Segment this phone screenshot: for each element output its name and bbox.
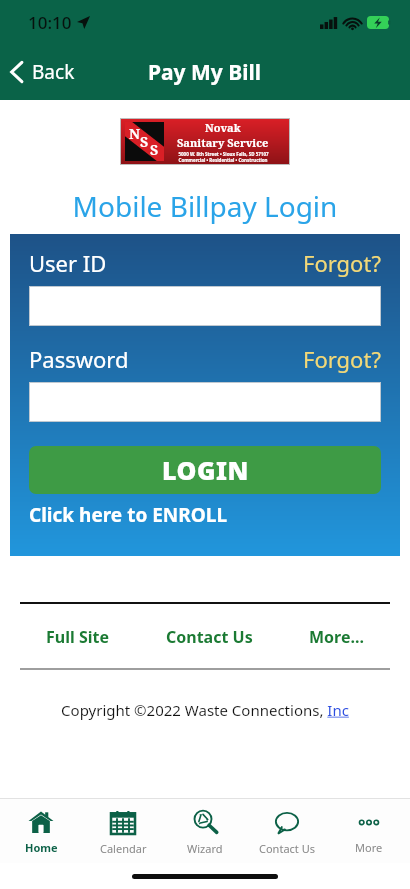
button[interactable]: Contact Us bbox=[164, 624, 255, 650]
button[interactable]: More bbox=[328, 799, 410, 863]
button[interactable]: LOGIN bbox=[29, 446, 381, 494]
button[interactable]: Click here to ENROLL bbox=[29, 502, 228, 528]
staticText: Contact Us bbox=[166, 626, 253, 648]
staticText: Click here to ENROLL bbox=[29, 502, 228, 528]
staticText: User ID bbox=[29, 248, 107, 278]
staticText: Commercial • Residential • Construction bbox=[178, 157, 268, 163]
staticText: More... bbox=[309, 626, 364, 648]
staticText: Pay My Bill bbox=[148, 58, 262, 87]
button[interactable]: Back bbox=[0, 51, 89, 93]
staticText: Calendar bbox=[100, 841, 147, 856]
button[interactable]: Full Site bbox=[44, 624, 111, 650]
button[interactable]: More... bbox=[307, 624, 366, 650]
staticText: Password bbox=[29, 344, 129, 374]
staticText: Wizard bbox=[187, 841, 223, 856]
staticText: Novak bbox=[205, 120, 241, 135]
staticText: N bbox=[129, 124, 141, 143]
button[interactable]: Calendar bbox=[82, 799, 164, 863]
staticText: Home bbox=[25, 840, 58, 855]
staticText: Forgot? bbox=[303, 248, 381, 278]
staticText: Forgot? bbox=[303, 344, 381, 374]
button[interactable]: Wizard bbox=[164, 799, 246, 863]
staticText: 10:10 bbox=[28, 11, 72, 34]
staticText: Copyright ©2022 Waste Connections, Inc bbox=[61, 700, 349, 720]
staticText: Full Site bbox=[46, 626, 109, 648]
staticText: S bbox=[140, 132, 149, 151]
staticText: Back bbox=[32, 59, 75, 85]
staticText: 5000 W. 8th Street • Sioux Falls, SD 571… bbox=[178, 151, 269, 157]
staticText: Mobile Billpay Login bbox=[0, 187, 410, 225]
staticText: More bbox=[355, 840, 383, 855]
button[interactable]: Forgot? bbox=[303, 344, 381, 374]
button[interactable]: Home bbox=[0, 799, 82, 863]
staticText: LOGIN bbox=[162, 453, 249, 487]
staticText: Sanitary Service bbox=[177, 135, 269, 150]
staticText: S bbox=[150, 140, 159, 159]
button[interactable]: Contact Us bbox=[246, 799, 328, 863]
button[interactable]: Forgot? bbox=[303, 248, 381, 278]
staticText: Contact Us bbox=[259, 841, 315, 856]
